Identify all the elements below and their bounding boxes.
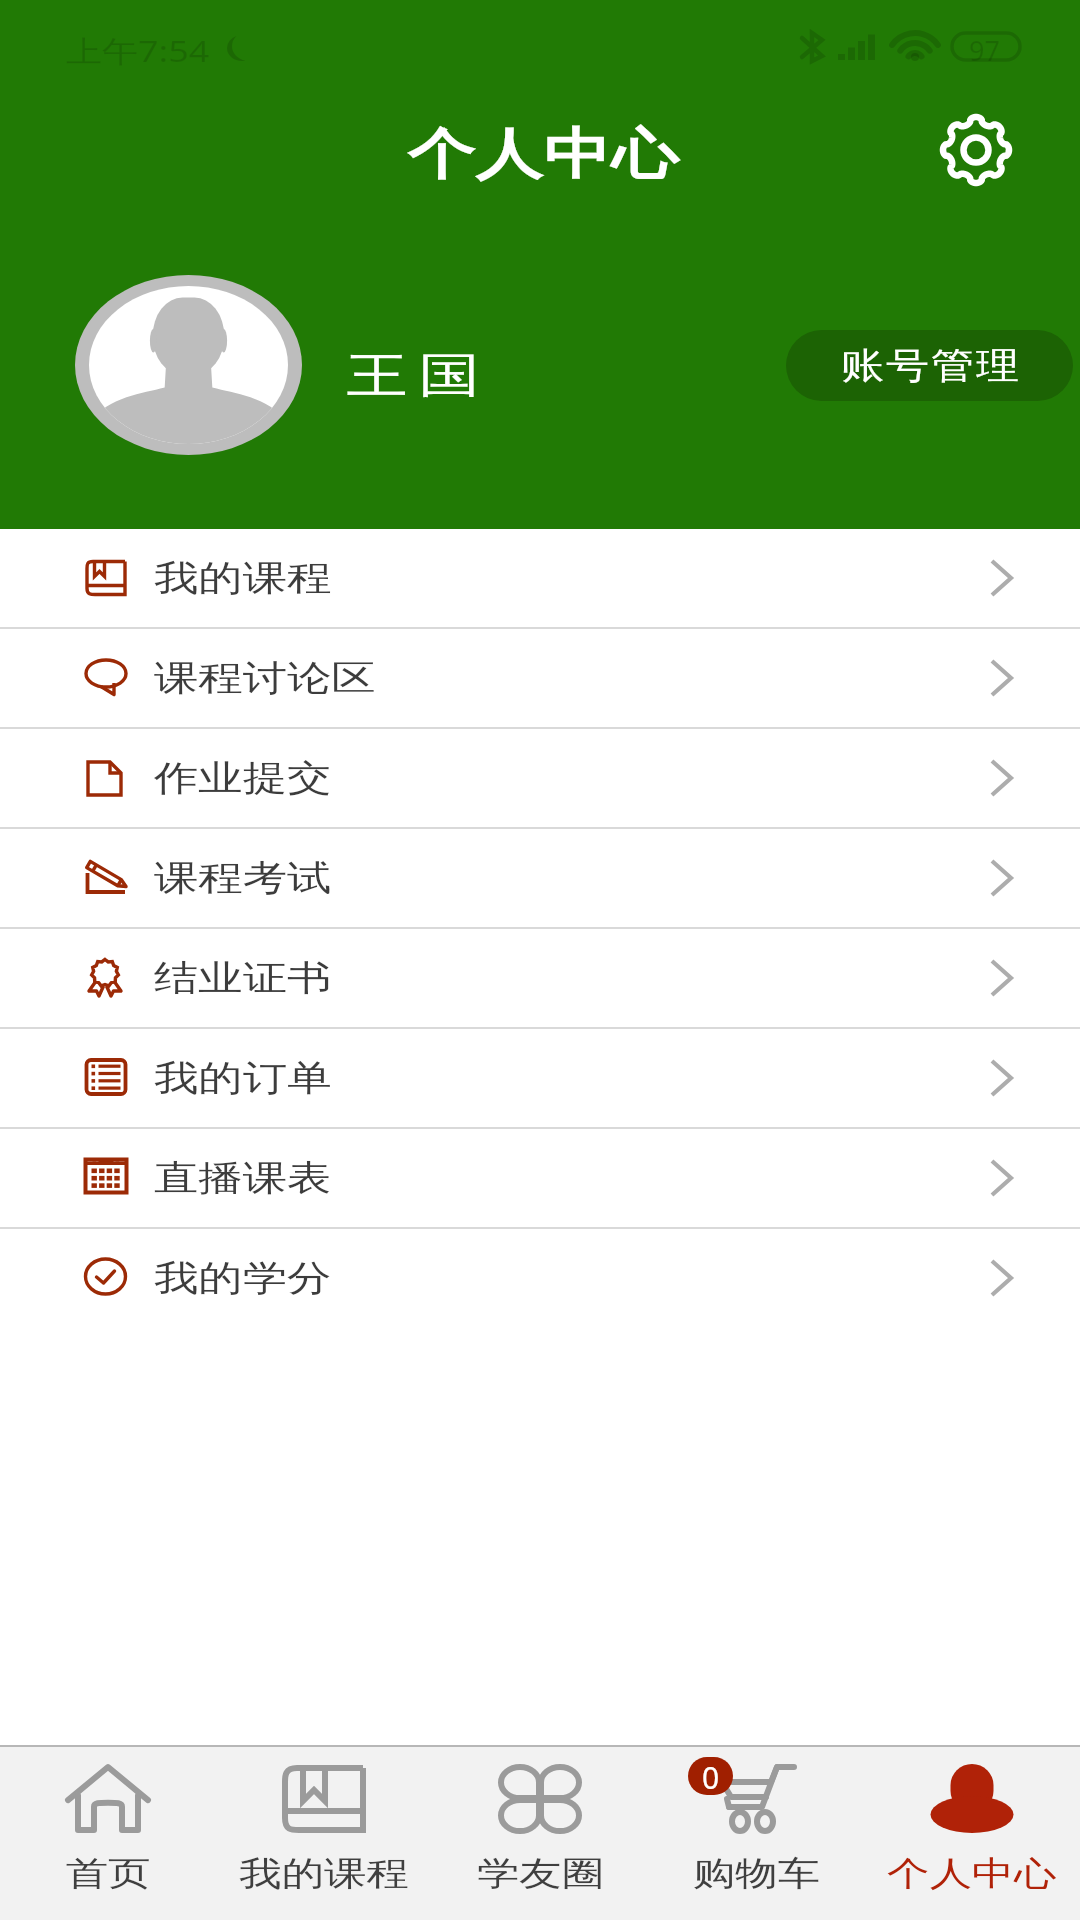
staticText: 上午7:54 xyxy=(66,30,210,71)
button[interactable]: 我的课程 xyxy=(0,529,1080,627)
button[interactable]: 课程考试 xyxy=(0,829,1080,927)
button[interactable]: 直播课表 xyxy=(0,1129,1080,1227)
staticText: 王国 xyxy=(341,345,485,406)
button[interactable]: 我的订单 xyxy=(0,1029,1080,1127)
staticText: 账号管理 xyxy=(840,343,1020,389)
staticText: 课程讨论区 xyxy=(154,656,376,701)
staticText: 购物车 xyxy=(693,1853,820,1895)
staticText: 作业提交 xyxy=(154,756,331,801)
staticText: 我的课程 xyxy=(154,556,331,601)
staticText: 首页 xyxy=(66,1853,150,1895)
button[interactable]: 结业证书 xyxy=(0,929,1080,1027)
button[interactable]: 首页 xyxy=(0,1747,216,1920)
button[interactable]: 我的学分 xyxy=(0,1229,1080,1327)
button[interactable]: 个人中心 xyxy=(864,1747,1080,1920)
button[interactable]: 我的课程 xyxy=(216,1747,432,1920)
staticText: 课程考试 xyxy=(154,856,331,901)
staticText: 直播课表 xyxy=(154,1156,331,1201)
staticText: 我的订单 xyxy=(154,1056,331,1101)
button[interactable]: 0 xyxy=(648,1747,864,1920)
staticText: 97 xyxy=(969,32,1000,69)
staticText: 我的学分 xyxy=(154,1256,331,1301)
staticText: 个人中心 xyxy=(407,120,679,188)
button[interactable]: 作业提交 xyxy=(0,729,1080,827)
staticText: 学友圈 xyxy=(477,1853,604,1895)
button[interactable]: Settings xyxy=(926,100,1026,200)
staticText: 个人中心 xyxy=(887,1853,1057,1895)
staticText: 结业证书 xyxy=(154,956,331,1001)
staticText: 0 xyxy=(702,1757,720,1795)
button[interactable]: 学友圈 xyxy=(432,1747,648,1920)
button[interactable]: 课程讨论区 xyxy=(0,629,1080,727)
staticText: 我的课程 xyxy=(239,1853,409,1895)
button[interactable]: Profile photo xyxy=(75,275,302,455)
button[interactable]: 账号管理 xyxy=(786,330,1073,401)
